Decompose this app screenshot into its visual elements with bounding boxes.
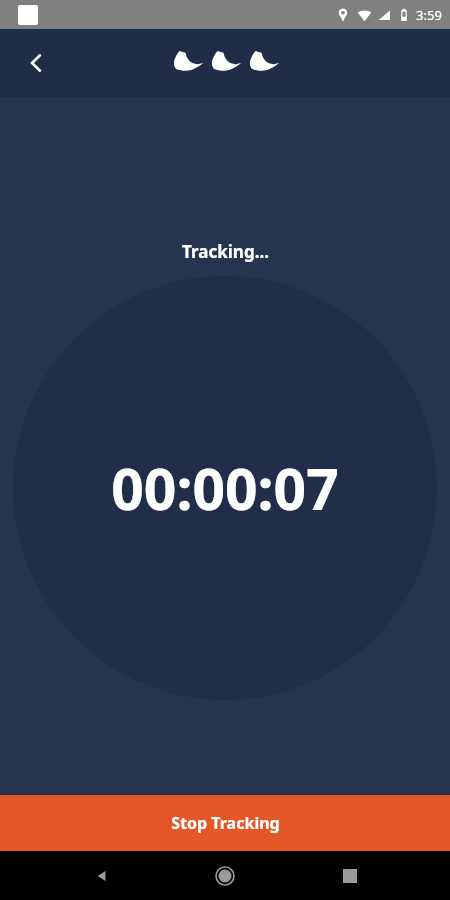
staticText: Tracking... xyxy=(182,240,269,263)
staticText: 3:59 xyxy=(416,6,442,24)
staticText: 00:00:07 xyxy=(111,449,339,527)
button[interactable]: Home xyxy=(203,854,247,898)
staticText: Stop Tracking xyxy=(171,812,280,834)
button[interactable]: Back xyxy=(14,41,58,85)
button[interactable]: Stop Tracking xyxy=(0,795,450,851)
button[interactable]: Back xyxy=(80,854,124,898)
button[interactable]: Recent apps xyxy=(328,854,372,898)
